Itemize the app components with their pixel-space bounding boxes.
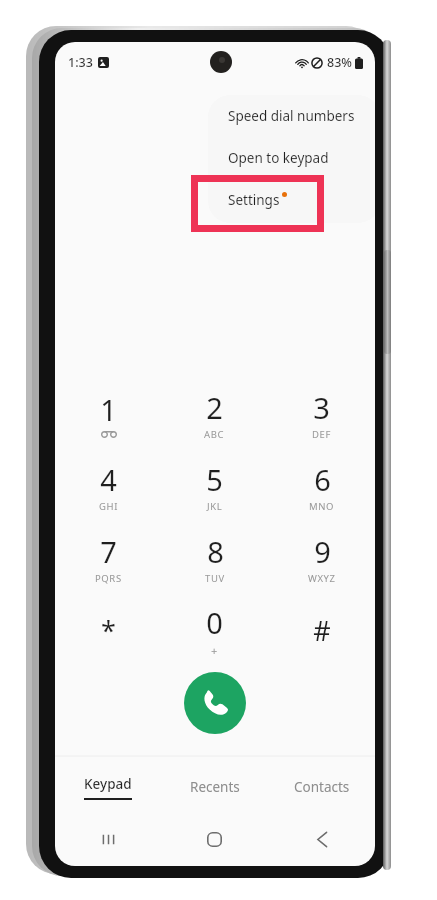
staticText: 7 bbox=[100, 532, 117, 571]
button[interactable]: 9 bbox=[268, 522, 375, 594]
button[interactable]: Open to keypad bbox=[208, 137, 375, 179]
staticText: WXYZ bbox=[308, 572, 336, 585]
button[interactable]: Settings bbox=[208, 179, 375, 221]
staticText: 3 bbox=[313, 388, 330, 427]
button[interactable]: Contacts bbox=[268, 765, 375, 809]
staticText: 5 bbox=[206, 460, 223, 499]
button[interactable]: Home bbox=[161, 817, 268, 861]
staticText: Keypad bbox=[84, 775, 132, 793]
staticText: 2 bbox=[206, 388, 223, 427]
button[interactable]: 7 bbox=[55, 522, 161, 594]
staticText: 9 bbox=[314, 532, 331, 571]
button[interactable]: # bbox=[268, 594, 375, 666]
button[interactable]: Recents bbox=[161, 765, 268, 809]
button[interactable]: Keypad bbox=[55, 765, 161, 809]
button[interactable]: 4 bbox=[55, 450, 161, 522]
staticText: Speed dial numbers bbox=[228, 107, 355, 125]
staticText: Recents bbox=[190, 778, 240, 796]
button[interactable]: 1 bbox=[55, 378, 161, 450]
staticText: ABC bbox=[204, 428, 225, 441]
button[interactable]: * bbox=[55, 594, 161, 666]
button[interactable]: 2 bbox=[161, 378, 268, 450]
staticText: MNO bbox=[309, 500, 335, 513]
button[interactable]: Recent apps bbox=[55, 817, 161, 861]
staticText: + bbox=[211, 643, 218, 658]
staticText: * bbox=[101, 612, 116, 649]
staticText: Contacts bbox=[294, 778, 350, 796]
staticText: TUV bbox=[205, 572, 225, 585]
staticText: 0 bbox=[206, 603, 223, 642]
staticText: # bbox=[313, 612, 331, 649]
button[interactable]: 8 bbox=[161, 522, 268, 594]
staticText: 4 bbox=[100, 460, 117, 499]
button[interactable]: Speed dial numbers bbox=[208, 95, 375, 137]
button[interactable]: 3 bbox=[268, 378, 375, 450]
staticText: PQRS bbox=[95, 572, 122, 585]
staticText: 83% bbox=[327, 54, 352, 71]
staticText: Open to keypad bbox=[228, 149, 329, 167]
staticText: 1:33 bbox=[68, 54, 93, 71]
staticText: DEF bbox=[312, 428, 331, 441]
staticText: 8 bbox=[207, 532, 224, 571]
staticText: JKL bbox=[207, 500, 223, 513]
button[interactable]: 5 bbox=[161, 450, 268, 522]
button[interactable]: Call bbox=[184, 672, 246, 734]
button[interactable]: 6 bbox=[268, 450, 375, 522]
button[interactable]: 0 bbox=[161, 594, 268, 666]
staticText: 1 bbox=[100, 390, 117, 429]
button[interactable]: Back bbox=[268, 817, 375, 861]
staticText: 6 bbox=[314, 460, 331, 499]
staticText: GHI bbox=[99, 500, 118, 513]
staticText: Settings bbox=[228, 191, 280, 209]
